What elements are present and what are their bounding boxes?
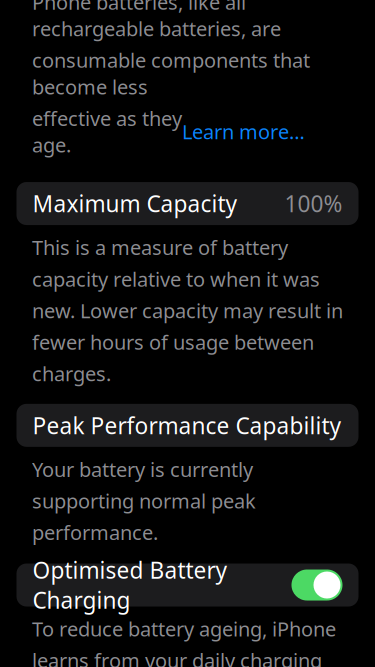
staticText: 100% (284, 188, 342, 219)
staticText: consumable components that become less (32, 47, 310, 100)
staticText: This is a measure of battery capacity re… (32, 234, 343, 387)
button[interactable]: Optimised Battery Charging (291, 569, 342, 600)
staticText: Learn more… (182, 118, 305, 145)
staticText: Optimised Battery Charging (32, 555, 227, 615)
staticText: To reduce battery ageing, iPhone learns … (32, 615, 339, 667)
staticText: effective as they age. (32, 105, 182, 158)
staticText: Phone batteries, like all rechargeable b… (32, 0, 281, 42)
staticText: Maximum Capacity (32, 188, 237, 219)
button[interactable]: Peak Performance Capability (0, 404, 375, 447)
staticText: Peak Performance Capability (32, 410, 341, 440)
staticText: Your battery is currently supporting nor… (32, 456, 256, 545)
button[interactable]: Learn more… (182, 118, 305, 145)
